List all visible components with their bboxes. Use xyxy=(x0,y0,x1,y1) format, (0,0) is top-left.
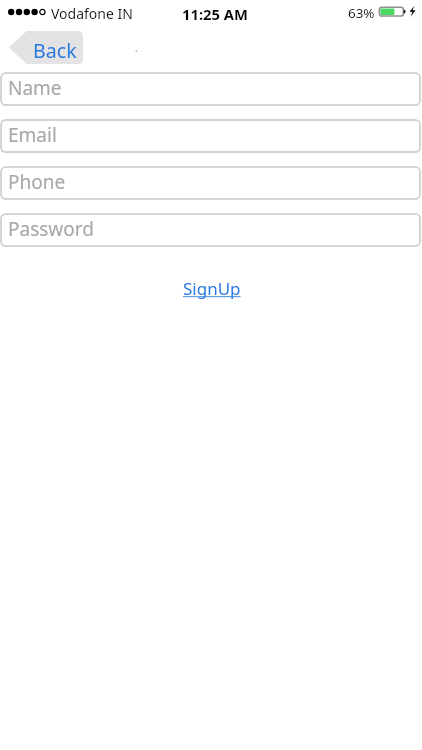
staticText: 11:25 AM xyxy=(182,4,249,24)
staticText: Name xyxy=(8,75,62,101)
staticText: Back xyxy=(33,37,77,64)
button[interactable]: Phone xyxy=(0,166,421,200)
staticText: Vodafone IN xyxy=(51,4,133,23)
button[interactable]: Name xyxy=(0,72,421,106)
staticText: 63% xyxy=(348,4,375,22)
button[interactable]: Password xyxy=(0,213,421,247)
staticText: Password xyxy=(8,216,94,242)
staticText: SignUp xyxy=(183,277,241,300)
staticText: Email xyxy=(8,122,57,148)
button[interactable]: SignUp xyxy=(183,277,241,300)
button[interactable]: Back xyxy=(9,31,83,64)
other: Signal strength 4 of 5 xyxy=(8,8,48,16)
button[interactable]: Email xyxy=(0,119,421,153)
staticText: Phone xyxy=(8,169,66,195)
other: Battery 63 percent, charging xyxy=(376,4,422,20)
